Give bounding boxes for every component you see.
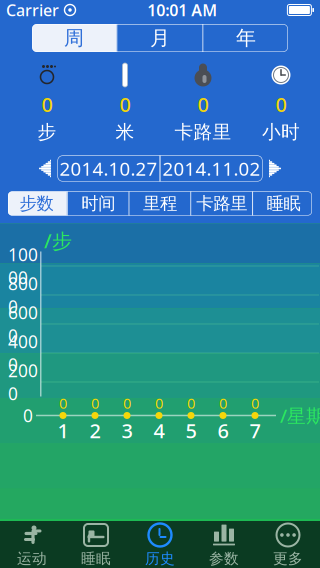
staticText: 卡路里 (196, 193, 247, 214)
button[interactable]: 运动 (0, 521, 64, 568)
button[interactable]: 卡路里 (191, 191, 252, 215)
staticText: 里程 (143, 193, 177, 214)
button[interactable]: 步数 (6, 191, 67, 215)
staticText: 米 (115, 121, 134, 143)
staticText: 10:01 AM (147, 0, 217, 21)
staticText: 0 (187, 393, 195, 413)
staticText: 8000 (8, 272, 38, 318)
staticText: 10000 (8, 243, 38, 289)
staticText: 3 (121, 417, 132, 444)
staticText: 睡眠 (81, 549, 111, 567)
button[interactable]: 历史 (128, 521, 192, 568)
staticText: 2014.10.27 (59, 156, 157, 181)
staticText: 2000 (8, 359, 38, 405)
staticText: Carrier (6, 0, 59, 21)
button[interactable]: Previous week (31, 153, 57, 183)
button[interactable]: 年 (203, 24, 288, 52)
staticText: 0 (119, 91, 130, 118)
staticText: 4 (153, 417, 164, 444)
staticText: 7 (249, 417, 260, 444)
button[interactable]: 周 (31, 24, 116, 52)
staticText: 0 (251, 393, 259, 413)
staticText: 1 (57, 417, 68, 444)
staticText: 2014.11.02 (162, 156, 260, 181)
staticText: 6 (217, 417, 228, 444)
staticText: 0 (219, 393, 227, 413)
staticText: 0 (91, 393, 99, 413)
button[interactable]: 月 (117, 24, 202, 52)
staticText: 睡眠 (267, 193, 301, 214)
staticText: 历史 (145, 549, 175, 567)
staticText: 0 (41, 91, 52, 118)
button[interactable]: 更多 (256, 521, 320, 568)
staticText: /步 (44, 227, 72, 254)
staticText: 更多 (273, 549, 303, 567)
staticText: 0 (23, 404, 33, 427)
staticText: 参数 (209, 549, 239, 567)
staticText: 卡路里 (174, 121, 231, 143)
staticText: 年 (236, 26, 256, 50)
button[interactable]: 时间 (68, 191, 129, 215)
staticText: 5 (185, 417, 196, 444)
staticText: 周 (64, 26, 84, 50)
button[interactable]: 参数 (192, 521, 256, 568)
staticText: /星期 (280, 403, 320, 428)
staticText: 0 (59, 393, 67, 413)
staticText: 步 (37, 121, 56, 143)
staticText: 0 (123, 393, 131, 413)
staticText: 小时 (262, 121, 300, 143)
staticText: 6000 (8, 301, 38, 347)
staticText: 2 (89, 417, 100, 444)
staticText: 0 (155, 393, 163, 413)
staticText: 运动 (17, 549, 47, 567)
staticText: 时间 (81, 193, 115, 214)
staticText: 4000 (8, 330, 38, 376)
staticText: 0 (197, 91, 208, 118)
staticText: 月 (150, 26, 170, 50)
staticText: 0 (275, 91, 286, 118)
button[interactable]: Next week (262, 153, 288, 183)
button[interactable]: 睡眠 (253, 191, 314, 215)
staticText: 步数 (19, 193, 53, 214)
button[interactable]: 里程 (130, 191, 190, 215)
button[interactable]: 睡眠 (64, 521, 128, 568)
